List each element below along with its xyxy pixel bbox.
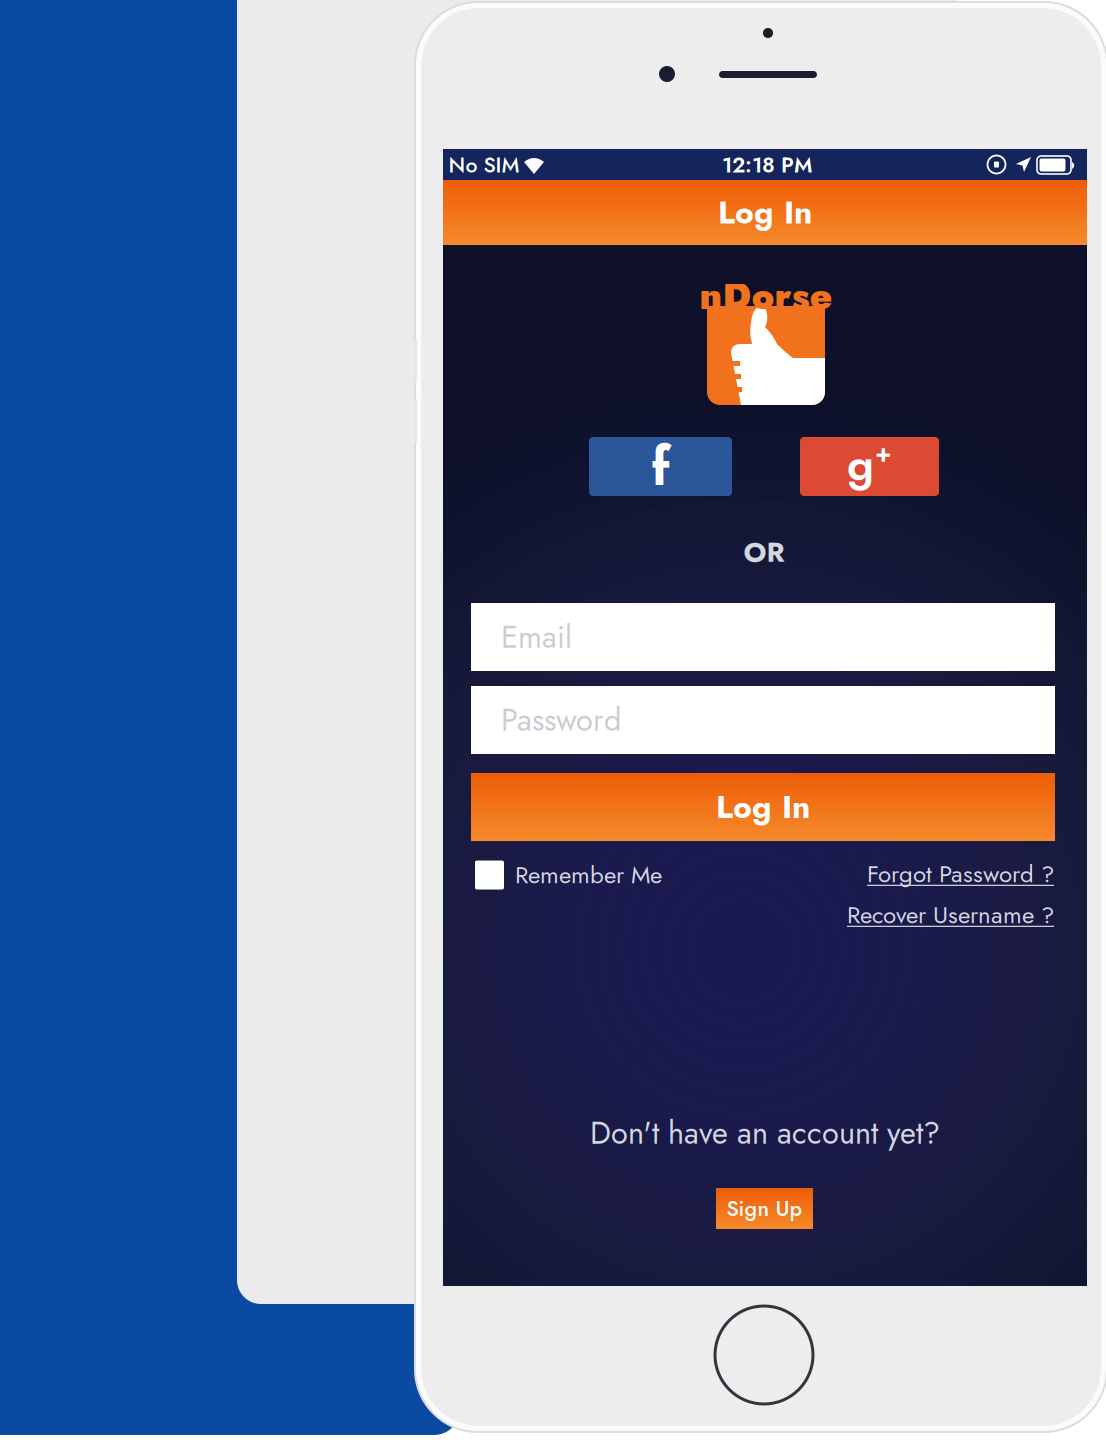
staticText: g bbox=[847, 432, 874, 497]
staticText: OR bbox=[743, 532, 784, 572]
button[interactable]: Recover Username ? bbox=[794, 901, 1054, 929]
staticText: Don't have an account yet? bbox=[590, 1111, 940, 1155]
staticText: Log In bbox=[716, 784, 810, 830]
button[interactable]: Sign in with Google Plus bbox=[800, 437, 939, 496]
button[interactable]: Sign Up bbox=[716, 1188, 813, 1229]
button[interactable]: Password bbox=[471, 686, 1055, 754]
staticText: 12:18 PM bbox=[722, 150, 812, 180]
staticText: Recover Username ? bbox=[847, 898, 1054, 932]
button[interactable]: Remember Me bbox=[475, 859, 705, 891]
button[interactable]: Log In bbox=[471, 773, 1055, 841]
staticText: Sign Up bbox=[726, 1193, 802, 1224]
button[interactable]: Email bbox=[471, 603, 1055, 671]
button[interactable]: Forgot Password ? bbox=[794, 860, 1054, 888]
staticText: nDorse bbox=[699, 269, 832, 323]
staticText: f bbox=[651, 428, 669, 505]
staticText: Log In bbox=[718, 189, 812, 236]
button[interactable]: Sign in with Facebook bbox=[589, 437, 732, 496]
staticText: Remember Me bbox=[515, 858, 662, 892]
staticText: Email bbox=[501, 615, 572, 659]
staticText: Forgot Password ? bbox=[867, 857, 1054, 891]
staticText: Password bbox=[501, 698, 621, 742]
staticText: No SIM bbox=[448, 150, 519, 180]
staticText: + bbox=[875, 435, 892, 471]
